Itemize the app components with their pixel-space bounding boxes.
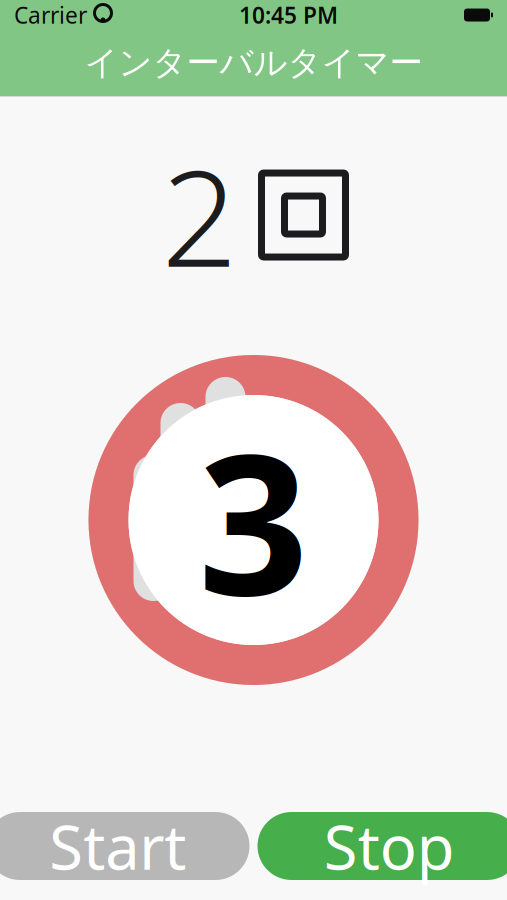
staticText: インターバルタイマー — [84, 42, 422, 83]
staticText: Carrier — [14, 0, 87, 30]
staticText: 10:45 PM — [239, 0, 338, 30]
staticText: Start — [49, 805, 186, 887]
staticText: 2 — [161, 126, 237, 304]
staticText: Stop — [324, 805, 455, 887]
button[interactable]: Stop — [257, 812, 507, 880]
button[interactable]: Start — [0, 812, 249, 880]
staticText: 3 — [198, 392, 309, 648]
